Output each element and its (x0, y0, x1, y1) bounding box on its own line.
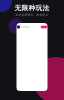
staticText: 从对话到创作，由你定义 (15, 13, 48, 16)
staticText: 无限种玩法 (14, 4, 49, 12)
